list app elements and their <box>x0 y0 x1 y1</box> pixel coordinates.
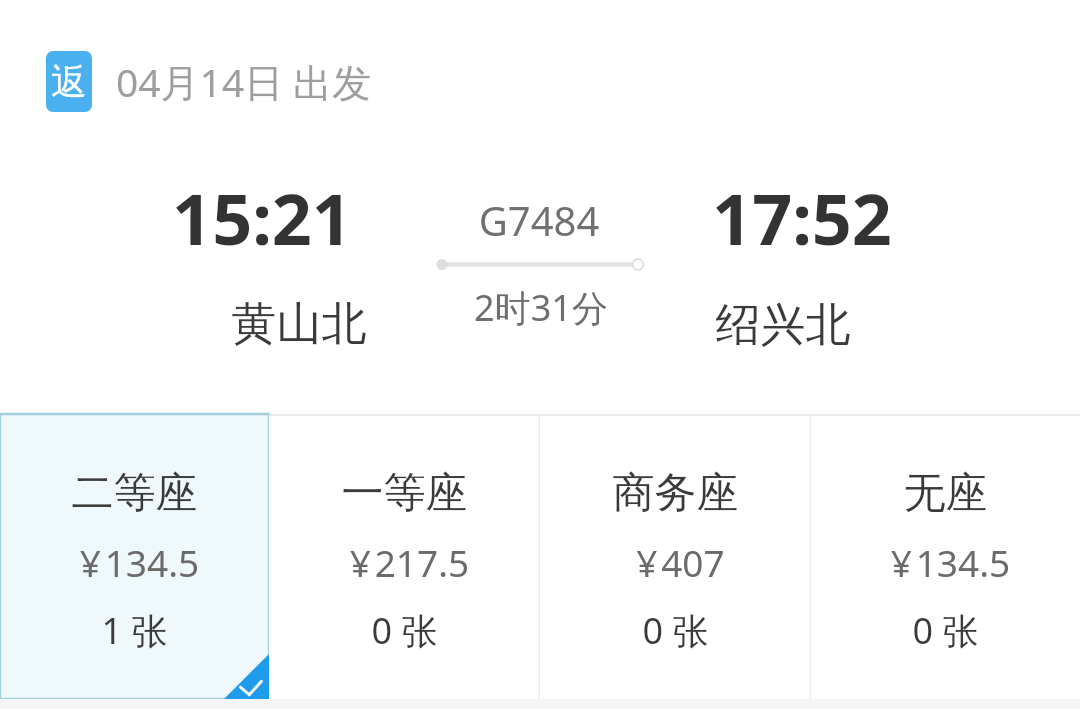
staticText: ¥ 217.5 <box>274 537 545 587</box>
staticText: ¥ 134.5 <box>816 537 1080 587</box>
staticText: 二等座 <box>0 467 269 520</box>
staticText: 无座 <box>811 467 1080 520</box>
staticText: 15:21 <box>0 170 802 265</box>
staticText: 商务座 <box>540 467 811 520</box>
button[interactable]: 04月14日 出发 <box>116 40 382 120</box>
staticText: 一等座 <box>269 467 540 520</box>
staticText: 2时31分 <box>1 283 1080 332</box>
button[interactable]: Back <box>46 51 92 112</box>
staticText: G7484 <box>0 193 1079 247</box>
button[interactable]: 商务座 <box>540 414 811 699</box>
staticText: ¥ 134.5 <box>5 537 274 587</box>
staticText: 17:52 <box>262 170 1080 265</box>
button[interactable]: 无座 <box>811 414 1080 699</box>
staticText: 1 张 <box>0 606 269 655</box>
button[interactable]: 一等座 <box>269 414 540 699</box>
staticText: 绍兴北 <box>243 297 1080 354</box>
staticText: ¥ 407 <box>545 537 816 587</box>
staticText: 返 <box>51 59 87 104</box>
staticText: 04月14日 出发 <box>116 55 372 108</box>
staticText: 0 张 <box>269 606 540 655</box>
button[interactable]: 二等座 <box>0 414 269 699</box>
staticText: 黄山北 <box>0 296 839 353</box>
staticText: 0 张 <box>540 606 811 655</box>
staticText: 0 张 <box>811 606 1080 655</box>
